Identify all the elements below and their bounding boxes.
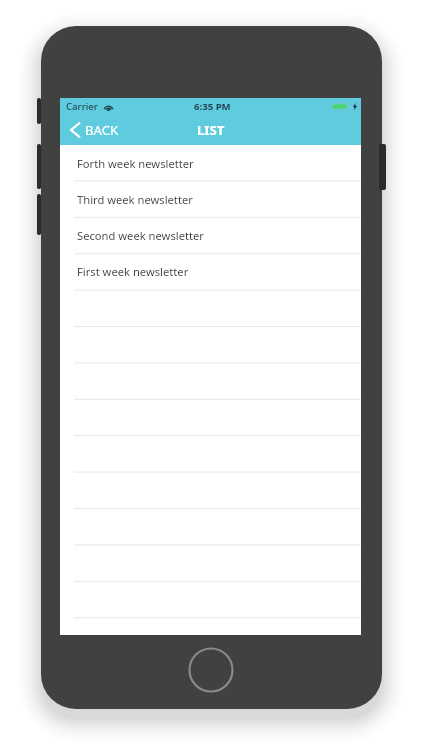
staticText: Third week newsletter	[77, 192, 193, 207]
staticText: Carrier	[66, 100, 98, 113]
button[interactable]: First week newsletter	[60, 253, 361, 289]
staticText: Second week newsletter	[77, 228, 204, 243]
button[interactable]	[60, 577, 361, 613]
button[interactable]: Second week newsletter	[60, 217, 361, 253]
staticText: BACK	[85, 121, 119, 139]
button[interactable]	[60, 505, 361, 541]
staticText: First week newsletter	[77, 264, 189, 279]
button[interactable]: Third week newsletter	[60, 181, 361, 217]
staticText: 6:35 PM	[194, 100, 231, 113]
button[interactable]	[60, 397, 361, 433]
staticText: Forth week newsletter	[77, 156, 194, 171]
button[interactable]	[60, 325, 361, 361]
button[interactable]: Forth week newsletter	[60, 145, 361, 181]
button[interactable]	[60, 433, 361, 469]
staticText: LIST	[197, 121, 225, 139]
button[interactable]: BACK	[60, 118, 127, 142]
